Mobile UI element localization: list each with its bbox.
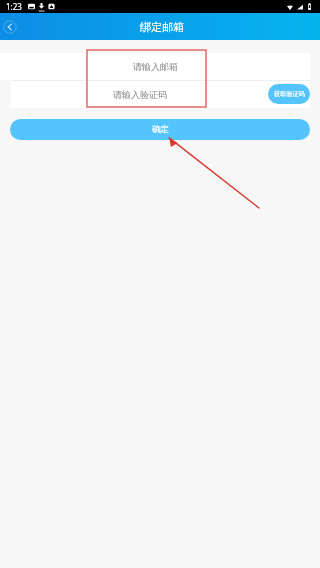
button[interactable]: 请输入验证码: [11, 80, 268, 108]
staticText: 1:23: [6, 1, 22, 12]
button[interactable]: 确定: [10, 119, 310, 140]
staticText: 请输入邮箱: [133, 61, 178, 72]
staticText: 绑定邮箱: [140, 20, 184, 34]
staticText: 获取验证码: [274, 90, 305, 98]
staticText: 确定: [152, 124, 169, 135]
staticText: 请输入验证码: [113, 89, 167, 100]
button[interactable]: Back: [3, 20, 17, 34]
button[interactable]: 获取验证码: [268, 84, 310, 104]
button[interactable]: 请输入邮箱: [0, 53, 310, 80]
